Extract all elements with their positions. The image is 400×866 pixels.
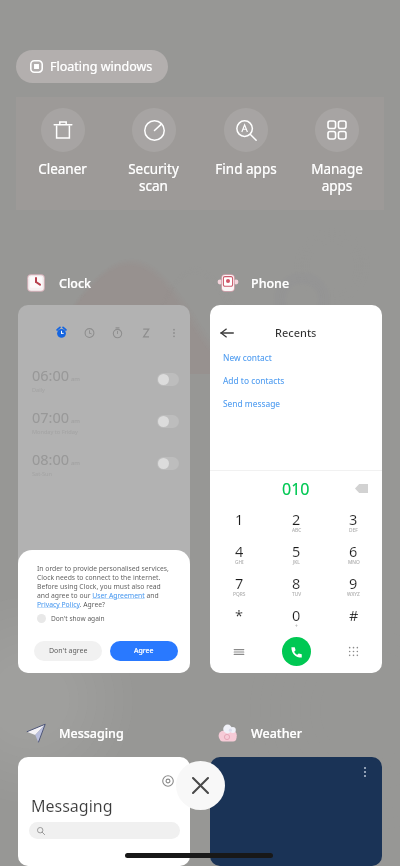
staticText: 8 (292, 573, 301, 593)
button[interactable]: Alarm (18, 305, 190, 673)
button[interactable]: Don't show again (37, 614, 105, 623)
staticText: PQRS (233, 591, 246, 598)
button[interactable]: Back (210, 305, 382, 673)
staticText: Agree (134, 646, 154, 656)
button[interactable]: Weather (210, 722, 302, 744)
button[interactable]: New contact (223, 346, 382, 369)
staticText: Daily (32, 386, 45, 394)
staticText: 3 (349, 509, 358, 529)
button[interactable]: 07:00 (32, 400, 179, 442)
staticText: Security scan (128, 160, 179, 195)
staticText: Floating windows (50, 58, 153, 75)
button[interactable]: Call log (233, 646, 245, 658)
button[interactable]: Phone (210, 272, 290, 294)
staticText: Weather (251, 725, 302, 742)
staticText: MNO (348, 559, 360, 566)
button[interactable]: Timer (141, 328, 151, 338)
button[interactable]: Don't agree (34, 641, 102, 661)
button[interactable]: More options (358, 765, 372, 779)
staticText: + (295, 623, 298, 630)
staticText: TUV (292, 591, 302, 598)
button[interactable]: Alarm toggle (157, 415, 179, 428)
button[interactable]: More options (169, 328, 179, 338)
staticText: Send message (223, 398, 281, 409)
staticText: am (71, 375, 80, 383)
button[interactable]: Alarm toggle (157, 373, 179, 386)
staticText: DEF (349, 527, 358, 534)
staticText: ABC (292, 527, 302, 534)
staticText: 7 (235, 573, 244, 593)
button[interactable]: 08:00 (32, 442, 179, 484)
button[interactable]: Floating windows (16, 50, 168, 83)
staticText: Monday to Friday (32, 428, 78, 436)
staticText: JKL (293, 559, 300, 566)
staticText: # (349, 605, 359, 625)
button[interactable]: # (325, 602, 382, 634)
staticText: 010 (282, 478, 310, 500)
button[interactable]: Manage apps (291, 108, 382, 195)
button[interactable]: * (210, 602, 268, 634)
staticText: Find apps (215, 160, 277, 178)
button[interactable]: 0 (268, 602, 325, 634)
staticText: Clock (59, 275, 92, 292)
staticText: 6 (349, 541, 358, 561)
button[interactable]: Account (18, 757, 190, 866)
staticText: 0 (292, 605, 301, 625)
button[interactable]: World clock (84, 327, 95, 338)
staticText: 9 (349, 573, 358, 593)
staticText: Messaging (31, 795, 113, 817)
staticText: In order to provide personalised service… (37, 564, 171, 609)
button[interactable]: Backspace (355, 484, 368, 493)
button[interactable]: Alarm (56, 327, 67, 338)
staticText: Add to contacts (223, 375, 285, 386)
button[interactable]: 7 (210, 570, 268, 602)
button[interactable]: Security scan (108, 108, 199, 195)
button[interactable]: Find apps (200, 108, 291, 178)
button[interactable]: Account (162, 775, 174, 787)
button[interactable]: Keypad (348, 646, 359, 657)
button[interactable]: 06:00 (32, 358, 179, 400)
staticText: Manage apps (311, 160, 363, 195)
staticText: Recents (275, 325, 317, 340)
staticText: * (235, 605, 243, 625)
staticText: Messaging (59, 725, 124, 742)
staticText: 4 (235, 541, 244, 561)
staticText: am (71, 417, 80, 425)
staticText: New contact (223, 352, 272, 363)
staticText: Don't show again (51, 614, 105, 623)
button[interactable]: Back (220, 326, 234, 340)
button[interactable]: Agree (110, 641, 178, 661)
staticText: am (71, 459, 80, 467)
staticText: 5 (292, 541, 301, 561)
staticText: Phone (251, 275, 290, 292)
staticText: GHI (235, 559, 244, 566)
button[interactable]: Cleaner (17, 108, 108, 178)
button[interactable]: Call (282, 637, 311, 666)
staticText: 07:00 (32, 407, 70, 427)
button[interactable]: 8 (268, 570, 325, 602)
button[interactable]: More options (210, 757, 382, 866)
button[interactable]: Add to contacts (223, 369, 382, 392)
staticText: 08:00 (32, 449, 70, 469)
button[interactable]: 3 (325, 506, 382, 538)
button[interactable]: 6 (325, 538, 382, 570)
button[interactable]: 5 (268, 538, 325, 570)
button[interactable]: Messaging (18, 722, 124, 744)
staticText: Sat-Sun (32, 470, 53, 478)
button[interactable]: Alarm toggle (157, 457, 179, 470)
staticText: 1 (235, 509, 244, 529)
staticText: WXYZ (347, 591, 360, 598)
staticText: Cleaner (38, 160, 87, 178)
button[interactable]: 9 (325, 570, 382, 602)
staticText: 06:00 (32, 365, 70, 385)
button[interactable]: Clock (18, 272, 92, 294)
staticText: Don't agree (49, 646, 88, 656)
button[interactable]: Send message (223, 392, 382, 415)
button[interactable]: Stopwatch (112, 327, 123, 338)
button[interactable]: 4 (210, 538, 268, 570)
button[interactable]: 2 (268, 506, 325, 538)
button[interactable]: Close all (176, 761, 225, 810)
button[interactable]: 1 (210, 506, 268, 538)
button[interactable] (29, 822, 180, 839)
staticText: 2 (292, 509, 301, 529)
